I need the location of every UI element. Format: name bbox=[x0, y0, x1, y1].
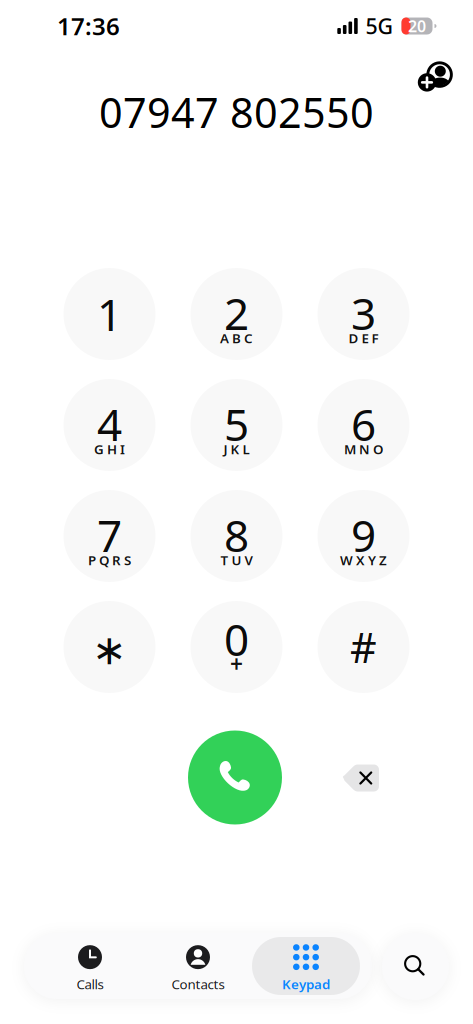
staticText: D E F bbox=[348, 329, 378, 347]
staticText: J K L bbox=[223, 440, 249, 458]
button[interactable]: Call bbox=[188, 730, 282, 824]
staticText: 6 bbox=[351, 395, 376, 453]
button[interactable]: 3 bbox=[317, 268, 409, 360]
staticText: G H I bbox=[94, 440, 125, 458]
button[interactable]: 9 bbox=[317, 490, 409, 582]
button[interactable]: 4 bbox=[63, 379, 155, 471]
staticText: 1 bbox=[97, 285, 122, 343]
staticText: # bbox=[350, 620, 377, 674]
staticText: 0 bbox=[224, 610, 249, 668]
staticText: + bbox=[230, 649, 243, 679]
staticText: 20 bbox=[408, 15, 426, 37]
staticText: 9 bbox=[351, 506, 376, 564]
staticText: M N O bbox=[344, 440, 383, 458]
staticText: W X Y Z bbox=[340, 551, 387, 569]
staticText: Keypad bbox=[282, 975, 330, 993]
staticText: 2 bbox=[224, 284, 249, 342]
button[interactable]: 0 bbox=[190, 601, 282, 693]
staticText: 7 bbox=[97, 506, 122, 564]
button[interactable]: 5 bbox=[190, 379, 282, 471]
staticText: P Q R S bbox=[88, 551, 131, 569]
button[interactable]: 2 bbox=[190, 268, 282, 360]
staticText: Contacts bbox=[171, 975, 224, 993]
button[interactable]: Search bbox=[382, 933, 449, 1000]
button[interactable]: 6 bbox=[317, 379, 409, 471]
button[interactable]: Delete bbox=[342, 763, 380, 792]
staticText: Calls bbox=[76, 975, 103, 993]
button[interactable]: # bbox=[317, 601, 409, 693]
button[interactable]: 1 bbox=[63, 268, 155, 360]
button[interactable]: 8 bbox=[190, 490, 282, 582]
staticText: 5 bbox=[224, 395, 249, 453]
staticText: 4 bbox=[97, 395, 122, 453]
button[interactable]: Calls bbox=[36, 937, 144, 995]
staticText: 07947 802550 bbox=[99, 85, 374, 139]
staticText: ∗ bbox=[92, 626, 127, 673]
staticText: 3 bbox=[351, 284, 376, 342]
button[interactable]: Keypad bbox=[252, 937, 360, 995]
button[interactable]: Contacts bbox=[144, 937, 252, 995]
staticText: 17:36 bbox=[57, 10, 120, 42]
button[interactable]: ∗ bbox=[63, 601, 155, 693]
staticText: A B C bbox=[220, 329, 253, 347]
button[interactable]: 7 bbox=[63, 490, 155, 582]
button[interactable]: Add Contact bbox=[418, 57, 452, 91]
staticText: 5G bbox=[365, 12, 393, 40]
staticText: T U V bbox=[220, 551, 252, 569]
staticText: 8 bbox=[224, 506, 249, 564]
